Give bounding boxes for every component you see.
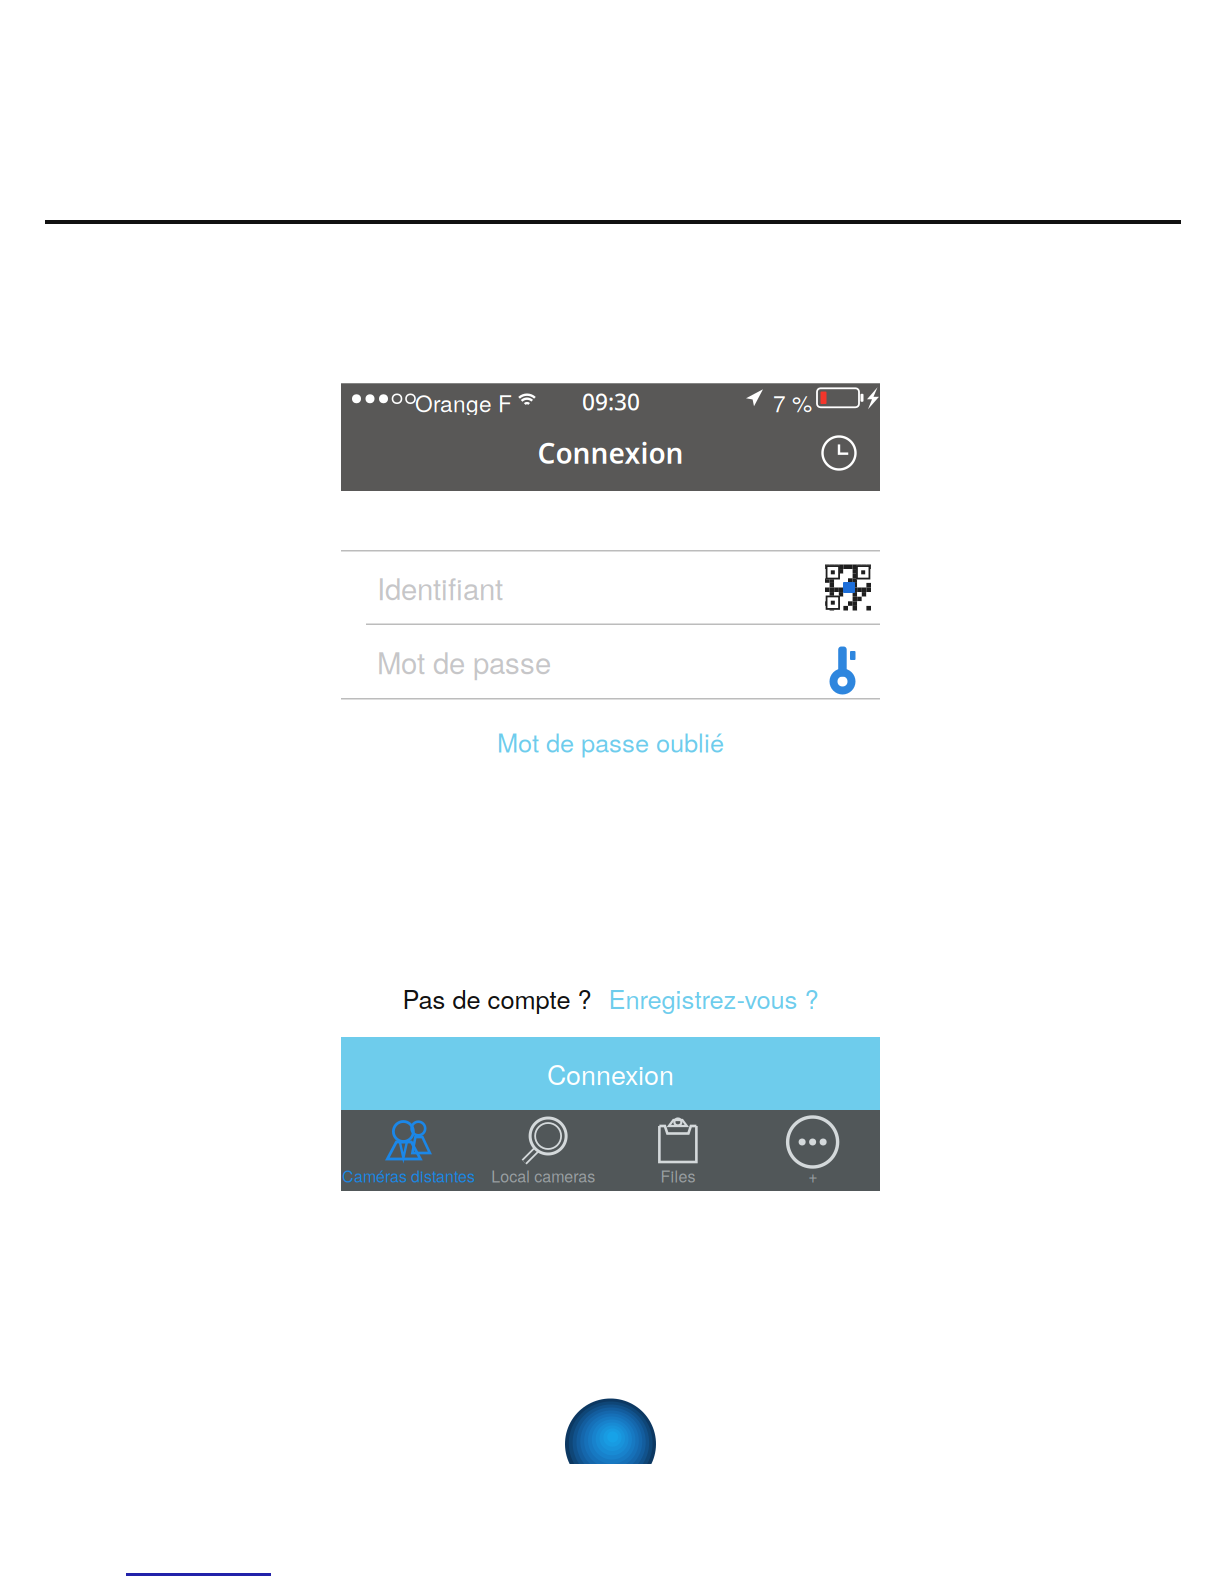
button[interactable]: Connexion bbox=[341, 1037, 880, 1110]
staticText: Orange F bbox=[415, 386, 512, 419]
staticText: 09:30 bbox=[582, 386, 640, 417]
staticText: Files bbox=[660, 1164, 695, 1187]
button[interactable]: Scan QR code bbox=[818, 557, 878, 617]
staticText: Mot de passe oublié bbox=[497, 723, 724, 760]
staticText: Connexion bbox=[547, 1054, 674, 1093]
staticText: Pas de compte ? bbox=[402, 980, 591, 1016]
button[interactable]: Show password bbox=[812, 631, 872, 691]
button[interactable]: Local cameras bbox=[476, 1110, 611, 1191]
staticText: Connexion bbox=[537, 434, 683, 472]
button[interactable]: Enregistrez-vous ? bbox=[608, 980, 818, 1016]
button[interactable]: + bbox=[745, 1110, 880, 1191]
staticText: + bbox=[808, 1164, 817, 1187]
button[interactable]: Caméras distantes bbox=[341, 1110, 476, 1191]
staticText: Mot de passe bbox=[377, 640, 551, 682]
staticText: Enregistrez-vous ? bbox=[608, 980, 818, 1016]
staticText: Local cameras bbox=[491, 1164, 595, 1187]
button[interactable]: Files bbox=[610, 1110, 745, 1191]
staticText: Identifiant bbox=[377, 566, 503, 608]
button[interactable]: Mot de passe oublié bbox=[341, 699, 880, 783]
staticText: 7 % bbox=[773, 386, 812, 419]
button[interactable]: History bbox=[807, 421, 871, 485]
staticText: Caméras distantes bbox=[342, 1164, 475, 1187]
